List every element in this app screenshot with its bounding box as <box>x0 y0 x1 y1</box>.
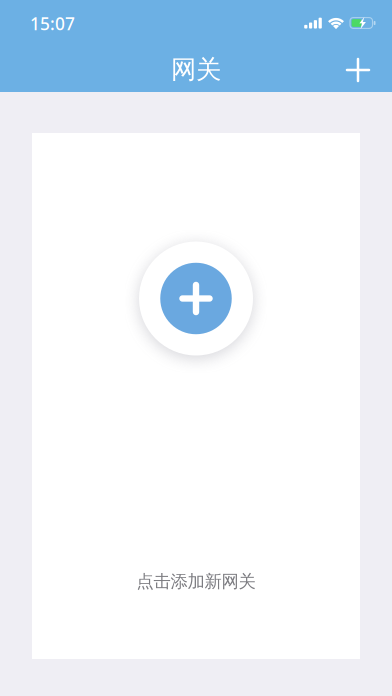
button[interactable]: Add gateway <box>336 48 380 92</box>
staticText: 网关 <box>171 54 221 85</box>
staticText: 15:07 <box>30 12 75 35</box>
button[interactable]: Add new gateway <box>131 233 261 363</box>
staticText: 点击添加新网关 <box>136 571 255 592</box>
